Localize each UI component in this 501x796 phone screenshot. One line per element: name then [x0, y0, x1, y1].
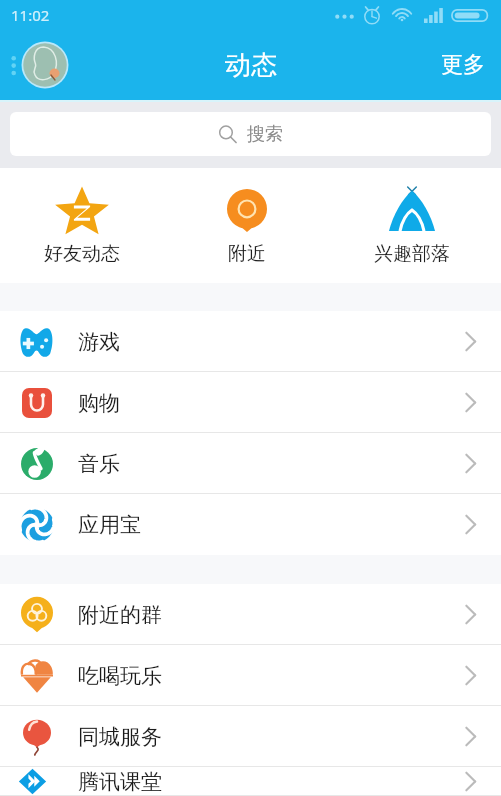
staticText: 吃喝玩乐 [78, 663, 162, 689]
button[interactable]: 附近的群 [0, 584, 501, 645]
button[interactable]: 游戏 [0, 311, 501, 372]
button[interactable]: 附近 [210, 184, 284, 268]
staticText: 游戏 [78, 329, 120, 355]
staticText: 兴趣部落 [374, 242, 450, 266]
staticText: 同城服务 [78, 724, 162, 750]
button[interactable]: 音乐 [0, 433, 501, 494]
staticText: 音乐 [78, 451, 120, 477]
staticText: 应用宝 [78, 512, 141, 538]
button[interactable]: 更多 [425, 41, 501, 89]
button[interactable]: 吃喝玩乐 [0, 645, 501, 706]
button[interactable]: 好友动态 [34, 184, 130, 268]
staticText: 更多 [441, 51, 485, 79]
button[interactable]: 同城服务 [0, 706, 501, 767]
staticText: 附近的群 [78, 602, 162, 628]
button[interactable]: 购物 [0, 372, 501, 433]
button[interactable]: 应用宝 [0, 494, 501, 555]
button[interactable]: 腾讯课堂 [0, 767, 501, 796]
button[interactable]: 搜索 [10, 112, 491, 156]
staticText: 附近 [228, 242, 266, 266]
staticText: 搜索 [247, 123, 283, 146]
staticText: 11:02 [11, 5, 50, 25]
staticText: 动态 [225, 49, 277, 82]
staticText: 腾讯课堂 [78, 769, 162, 795]
staticText: 好友动态 [44, 242, 120, 266]
button[interactable]: Profile [5, 40, 70, 90]
button[interactable]: 兴趣部落 [364, 184, 460, 268]
staticText: 购物 [78, 390, 120, 416]
